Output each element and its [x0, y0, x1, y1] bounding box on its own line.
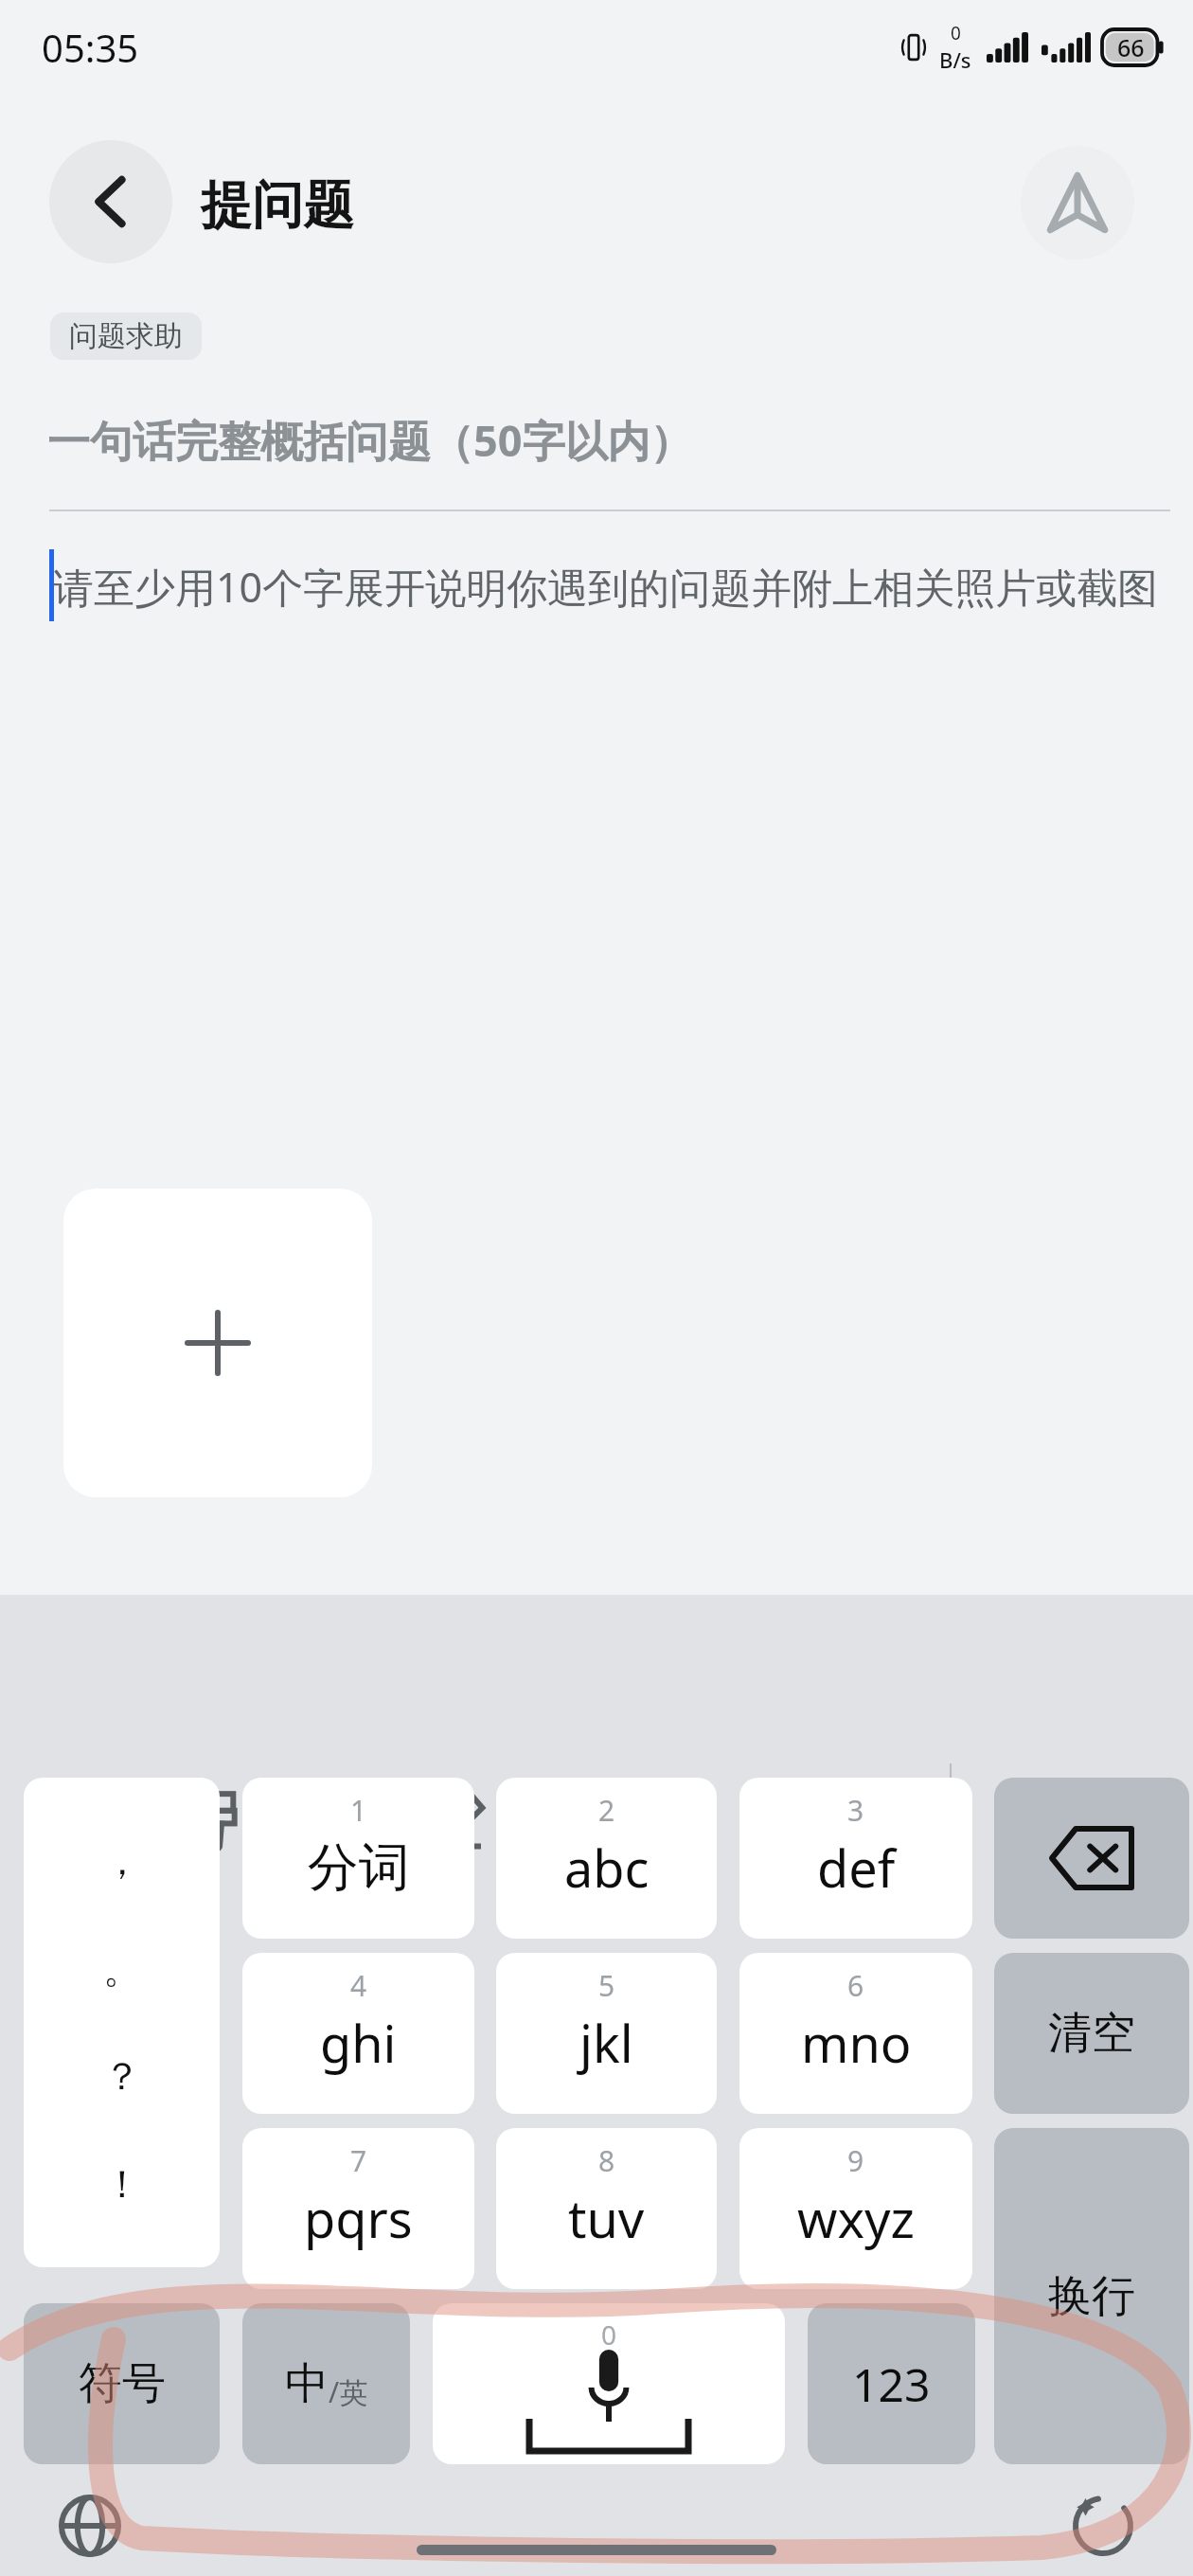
staticText: 问题求助 — [69, 318, 183, 354]
staticText: wxyz — [797, 2183, 915, 2253]
button[interactable]: 问题求助 — [50, 313, 202, 360]
staticText: tuv — [568, 2183, 645, 2253]
button[interactable]: 4 — [242, 1953, 474, 2114]
button[interactable]: Send — [1021, 146, 1134, 259]
button[interactable]: Back — [49, 140, 172, 263]
staticText: pqrs — [304, 2183, 413, 2253]
button[interactable]: Backspace — [994, 1778, 1189, 1939]
button[interactable]: AI — [268, 1752, 404, 1885]
button[interactable]: Handwriting — [386, 1752, 523, 1885]
button[interactable]: Hide keyboard — [1004, 1752, 1140, 1885]
button[interactable]: 3 — [739, 1778, 972, 1939]
button[interactable]: 2 — [496, 1778, 717, 1939]
button[interactable]: 7 — [242, 2128, 474, 2289]
staticText: ghi — [320, 2008, 397, 2078]
button[interactable]: Space / voice input — [433, 2303, 785, 2464]
button[interactable]: 123 — [808, 2303, 975, 2464]
staticText: 5 — [598, 1966, 615, 2005]
staticText: 0 — [601, 2317, 617, 2352]
staticText: 0 — [951, 21, 961, 45]
staticText: 中 — [285, 2356, 329, 2411]
staticText: 8 — [598, 2141, 615, 2180]
staticText: 清空 — [1048, 2006, 1135, 2061]
staticText: 9 — [847, 2141, 864, 2180]
staticText: 分词 — [308, 1835, 410, 1900]
staticText: 1 — [350, 1791, 367, 1830]
button[interactable]: 8 — [496, 2128, 717, 2289]
staticText: 7 — [350, 2141, 367, 2180]
staticText: 66 — [1117, 31, 1145, 63]
button[interactable]: Theme — [150, 1752, 286, 1885]
staticText: 05:35 — [42, 22, 139, 73]
button[interactable]: Add photo — [63, 1189, 372, 1497]
button[interactable]: Emoji — [505, 1752, 641, 1885]
staticText: 2 — [598, 1791, 615, 1830]
staticText: 6 — [847, 1966, 864, 2005]
staticText: 换行 — [1048, 2269, 1135, 2324]
button[interactable]: Switch input language — [28, 2470, 151, 2576]
button[interactable]: ， — [24, 1778, 220, 2267]
button[interactable]: 6 — [739, 1953, 972, 2114]
staticText: 符号 — [79, 2356, 166, 2411]
button[interactable]: 换行 — [994, 2128, 1189, 2464]
button[interactable]: AI assist — [1042, 2470, 1165, 2576]
staticText: 提问题 — [201, 173, 354, 238]
staticText: def — [817, 1833, 896, 1903]
staticText: mno — [801, 2008, 912, 2078]
staticText: ！ — [103, 2160, 141, 2208]
button[interactable]: 5 — [496, 1953, 717, 2114]
staticText: /英 — [329, 2372, 368, 2411]
staticText: 3 — [847, 1791, 864, 1830]
staticText: 。 — [103, 1945, 141, 1993]
staticText: ？ — [103, 2052, 141, 2100]
button[interactable]: 1 — [242, 1778, 474, 1939]
staticText: ， — [103, 1837, 141, 1885]
staticText: 123 — [852, 2353, 931, 2415]
button[interactable]: 符号 — [24, 2303, 220, 2464]
button[interactable]: 中 — [242, 2303, 410, 2464]
button[interactable]: 9 — [739, 2128, 972, 2289]
staticText: 4 — [350, 1966, 367, 2005]
staticText: 请至少用10个字展开说明你遇到的问题并附上相关照片或截图 — [53, 559, 1161, 615]
staticText: 一句话完整概括问题（50字以内） — [47, 411, 693, 469]
staticText: jkl — [579, 2008, 633, 2078]
staticText: B/s — [939, 45, 971, 74]
button[interactable]: 清空 — [994, 1953, 1189, 2114]
staticText: abc — [564, 1833, 650, 1903]
button[interactable]: AI keyboard — [17, 1752, 153, 1885]
